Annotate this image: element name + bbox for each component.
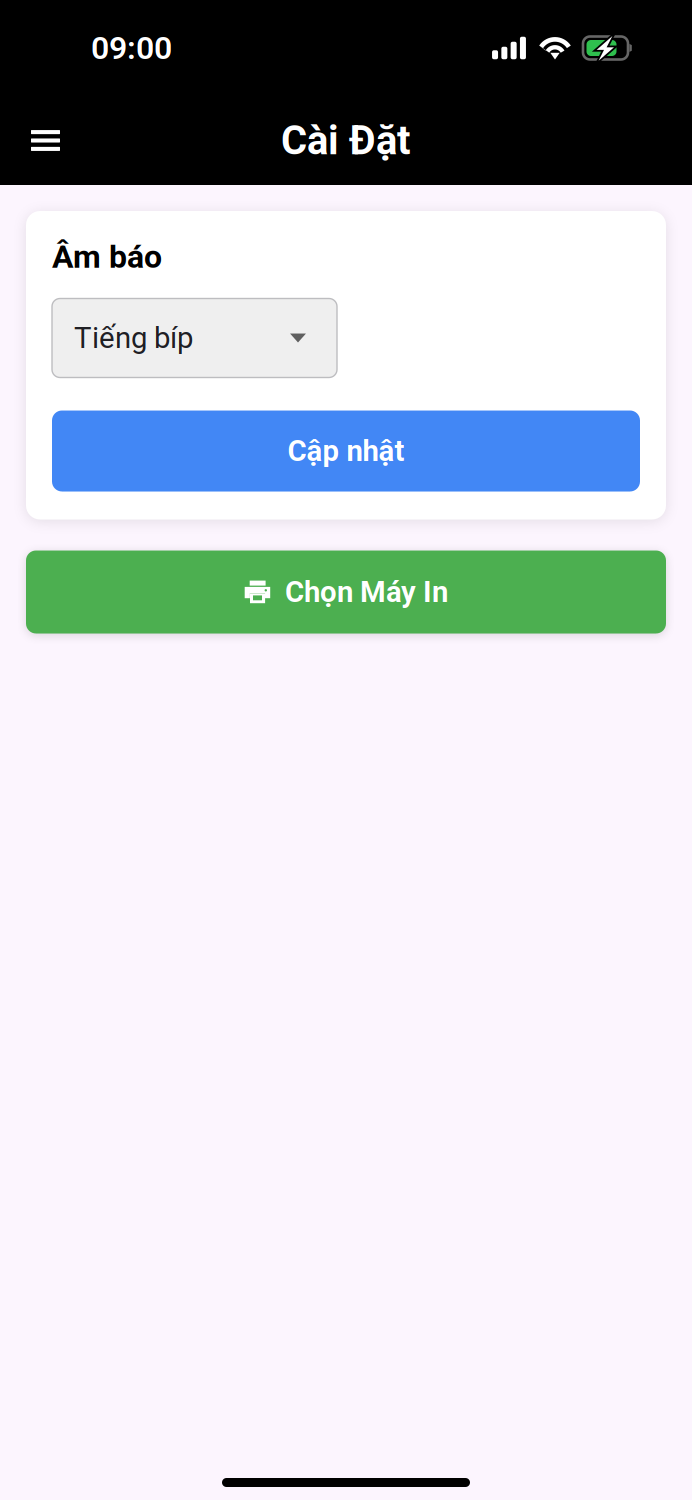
- button[interactable]: Menu: [15, 114, 76, 167]
- staticText: Cập nhật: [287, 434, 404, 468]
- button[interactable]: Chọn Máy In: [26, 550, 666, 633]
- button[interactable]: Tiếng bíp: [52, 298, 337, 377]
- staticText: Chọn Máy In: [285, 575, 448, 609]
- button[interactable]: Cập nhật: [52, 410, 640, 491]
- staticText: Âm báo: [52, 238, 162, 275]
- staticText: Tiếng bíp: [74, 321, 193, 355]
- staticText: Cài Đặt: [281, 117, 411, 164]
- staticText: 09:00: [91, 29, 172, 67]
